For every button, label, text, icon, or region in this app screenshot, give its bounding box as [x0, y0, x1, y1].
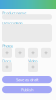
staticText: Publish: [21, 87, 33, 92]
staticText: Product name: [2, 10, 26, 15]
staticText: Photos: [2, 43, 13, 49]
button[interactable]: Publish: [2, 86, 52, 93]
staticText: Video: [28, 58, 37, 63]
staticText: Save as draft: [16, 77, 38, 82]
button[interactable]: Save as draft: [2, 76, 52, 83]
staticText: Description: [2, 20, 22, 26]
staticText: Docs: [2, 58, 11, 63]
